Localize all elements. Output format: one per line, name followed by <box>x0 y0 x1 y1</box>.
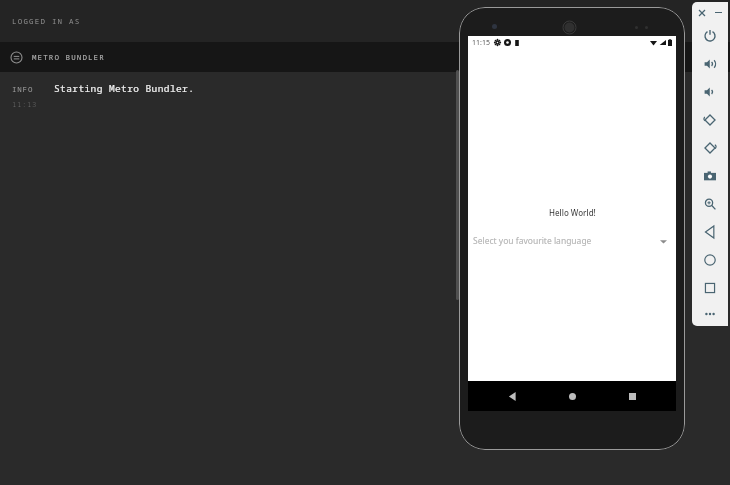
staticText: 11:13 <box>12 99 37 109</box>
button[interactable]: Volume down <box>692 78 728 106</box>
staticText: METRO BUNDLER <box>32 52 105 62</box>
button[interactable]: Recent apps <box>616 381 648 411</box>
button[interactable]: More <box>692 302 728 326</box>
button[interactable]: Power <box>692 22 728 50</box>
button[interactable]: Rotate left <box>692 106 728 134</box>
button[interactable]: Volume up <box>692 50 728 78</box>
staticText: Select you favourite language <box>473 235 592 247</box>
staticText: INFO <box>12 84 34 94</box>
staticText: Hello World! <box>549 207 596 218</box>
button[interactable]: Home <box>692 246 728 274</box>
button[interactable]: Close <box>695 6 708 19</box>
staticText: Starting Metro Bundler. <box>54 82 195 95</box>
button[interactable]: Rotate right <box>692 134 728 162</box>
button[interactable]: Back <box>496 381 528 411</box>
button[interactable]: Select you favourite language <box>468 230 676 252</box>
button[interactable]: Home <box>556 381 588 411</box>
button[interactable]: Back <box>692 218 728 246</box>
button[interactable]: Minimize <box>712 6 725 19</box>
button[interactable]: METRO BUNDLER <box>0 42 730 72</box>
staticText: LOGGED IN AS <box>12 16 81 26</box>
button[interactable]: Screenshot <box>692 162 728 190</box>
button[interactable]: Overview <box>692 274 728 302</box>
staticText: 11:15 <box>472 38 490 48</box>
button[interactable]: Zoom <box>692 190 728 218</box>
